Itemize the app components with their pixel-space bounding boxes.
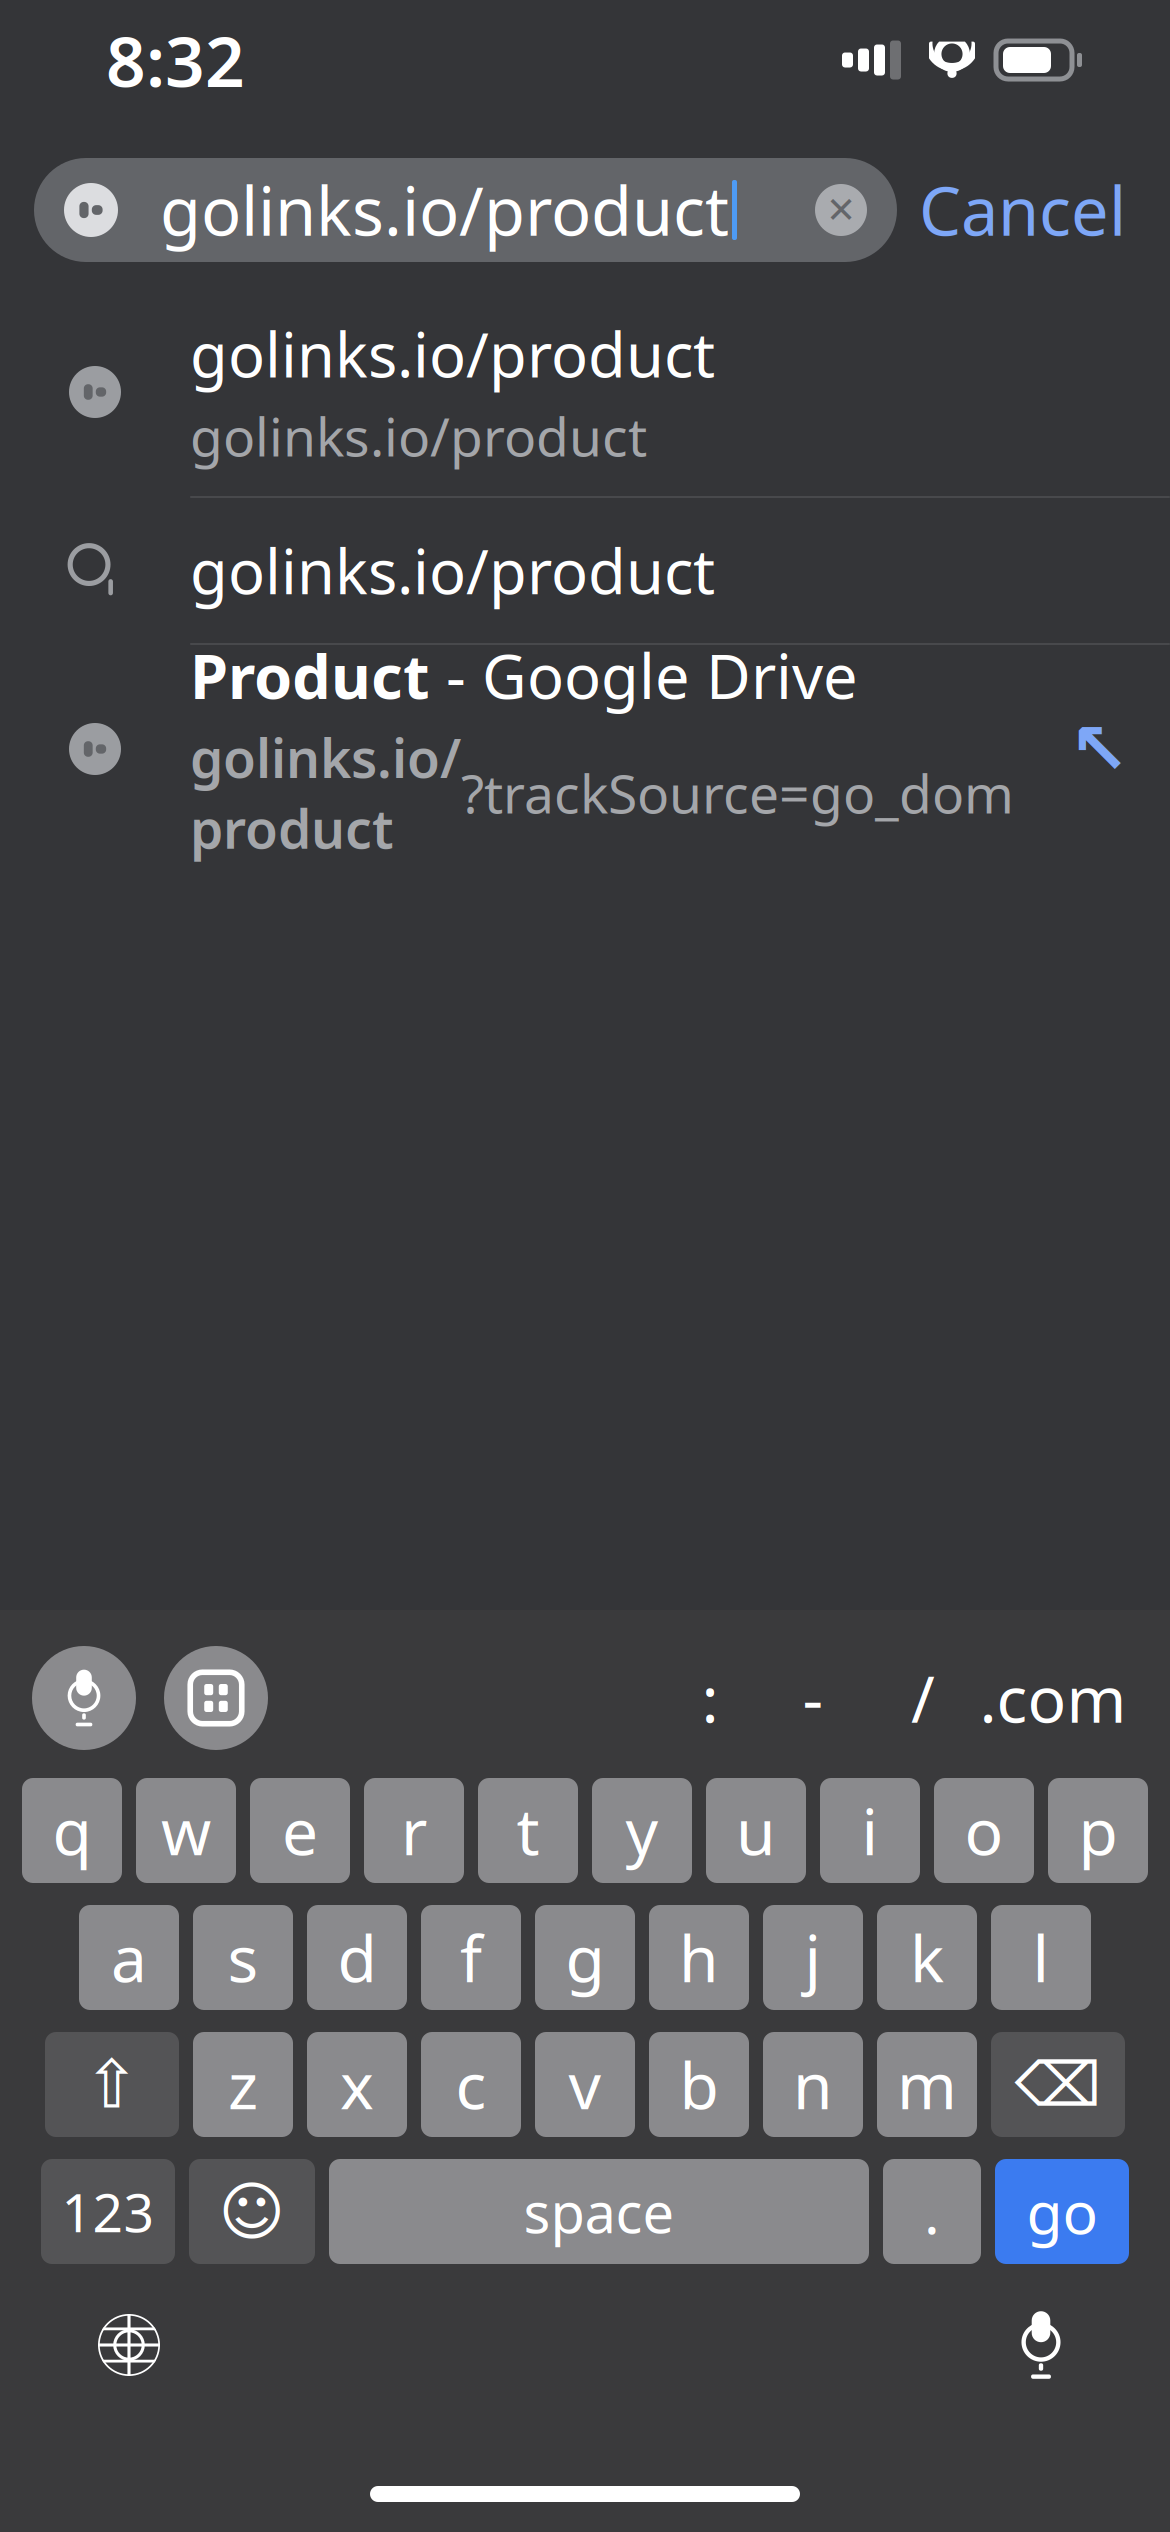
button[interactable]: g	[535, 1905, 635, 2010]
button[interactable]: Dictation	[986, 2290, 1096, 2400]
staticText: a	[111, 1915, 147, 2000]
button[interactable]: d	[307, 1905, 407, 2010]
button[interactable]: n	[763, 2032, 863, 2137]
staticText: Cancel	[919, 166, 1126, 254]
button[interactable]: Delete	[991, 2032, 1125, 2137]
staticText: 8:32	[106, 14, 245, 106]
staticText: ?trackSource=go_dom	[461, 757, 1014, 828]
button[interactable]: u	[706, 1778, 806, 1883]
staticText: ☺	[218, 2175, 285, 2248]
staticText: m	[897, 2042, 957, 2127]
button[interactable]: Cancel	[897, 158, 1148, 262]
button[interactable]: a	[79, 1905, 179, 2010]
staticText: d	[337, 1915, 376, 2000]
staticText: i	[861, 1788, 878, 1873]
staticText: j	[804, 1915, 821, 2000]
button[interactable]: Period	[883, 2159, 981, 2264]
button[interactable]: p	[1048, 1778, 1148, 1883]
button[interactable]: :	[662, 1646, 758, 1750]
staticText: y	[625, 1788, 658, 1873]
staticText: g	[565, 1915, 604, 2000]
button[interactable]: f	[421, 1905, 521, 2010]
staticText: golinks.io/product	[190, 400, 647, 471]
button[interactable]: t	[478, 1778, 578, 1883]
staticText: r	[401, 1788, 427, 1873]
button[interactable]: -	[758, 1646, 868, 1750]
staticText: f	[460, 1915, 482, 2000]
staticText: .com	[979, 1655, 1126, 1740]
button[interactable]: l	[991, 1905, 1091, 2010]
button[interactable]: Numbers	[41, 2159, 175, 2264]
staticText: space	[523, 2174, 674, 2249]
button[interactable]: h	[649, 1905, 749, 2010]
button[interactable]: Space	[329, 2159, 869, 2264]
staticText: golinks.io/product	[160, 166, 729, 254]
button[interactable]: y	[592, 1778, 692, 1883]
button[interactable]: w	[136, 1778, 236, 1883]
button[interactable]: Product	[0, 645, 1170, 853]
button[interactable]: b	[649, 2032, 749, 2137]
button[interactable]: .com	[978, 1646, 1128, 1750]
button[interactable]: o	[934, 1778, 1034, 1883]
button[interactable]: Emoji	[189, 2159, 315, 2264]
button[interactable]: Dictate	[32, 1646, 136, 1750]
staticText: ⌫	[1014, 2050, 1101, 2119]
staticText: l	[1032, 1915, 1049, 2000]
staticText: q	[52, 1788, 91, 1873]
staticText: .	[924, 2172, 940, 2250]
staticText: - Google Drive	[430, 634, 858, 716]
button[interactable]: /	[868, 1646, 978, 1750]
staticText: c	[455, 2042, 486, 2127]
staticText: z	[228, 2042, 258, 2127]
staticText: go	[1026, 2172, 1097, 2250]
button[interactable]: Scan text	[164, 1646, 268, 1750]
button[interactable]: x	[307, 2032, 407, 2137]
button[interactable]: Shift	[45, 2032, 179, 2137]
staticText: u	[736, 1788, 776, 1873]
button[interactable]: golinks.io/product	[0, 498, 1170, 645]
staticText: b	[679, 2042, 718, 2127]
button[interactable]: z	[193, 2032, 293, 2137]
staticText: e	[282, 1788, 318, 1873]
staticText: -	[802, 1655, 823, 1740]
staticText: ✕	[826, 190, 856, 230]
button[interactable]: s	[193, 1905, 293, 2010]
staticText: w	[161, 1788, 211, 1873]
staticText: golinks.io/product	[190, 530, 715, 611]
staticText: :	[701, 1655, 718, 1740]
staticText: Product	[190, 634, 430, 716]
button[interactable]: e	[250, 1778, 350, 1883]
staticText: /	[911, 1655, 935, 1740]
button[interactable]: r	[364, 1778, 464, 1883]
staticText: golinks.io/product	[190, 313, 715, 394]
staticText: ⇧	[84, 2047, 140, 2122]
button[interactable]: j	[763, 1905, 863, 2010]
button[interactable]: m	[877, 2032, 977, 2137]
staticText: s	[227, 1915, 258, 2000]
button[interactable]: q	[22, 1778, 122, 1883]
staticText: golinks.io/product	[190, 722, 461, 863]
staticText: p	[1078, 1788, 1117, 1873]
button[interactable]: c	[421, 2032, 521, 2137]
button[interactable]: Go	[995, 2159, 1129, 2264]
staticText: k	[910, 1915, 944, 2000]
staticText: v	[568, 2042, 601, 2127]
staticText: o	[964, 1788, 1003, 1873]
button[interactable]: i	[820, 1778, 920, 1883]
staticText: x	[340, 2042, 374, 2127]
staticText: t	[516, 1788, 539, 1873]
staticText: n	[793, 2042, 833, 2127]
staticText: 123	[61, 2176, 154, 2247]
button[interactable]: Clear text	[795, 158, 897, 262]
button[interactable]: Next keyboard	[74, 2290, 184, 2400]
staticText: h	[679, 1915, 719, 2000]
button[interactable]: golinks.io/product	[0, 288, 1170, 498]
button[interactable]: v	[535, 2032, 635, 2137]
staticText: ↖	[1069, 708, 1129, 790]
button[interactable]: k	[877, 1905, 977, 2010]
